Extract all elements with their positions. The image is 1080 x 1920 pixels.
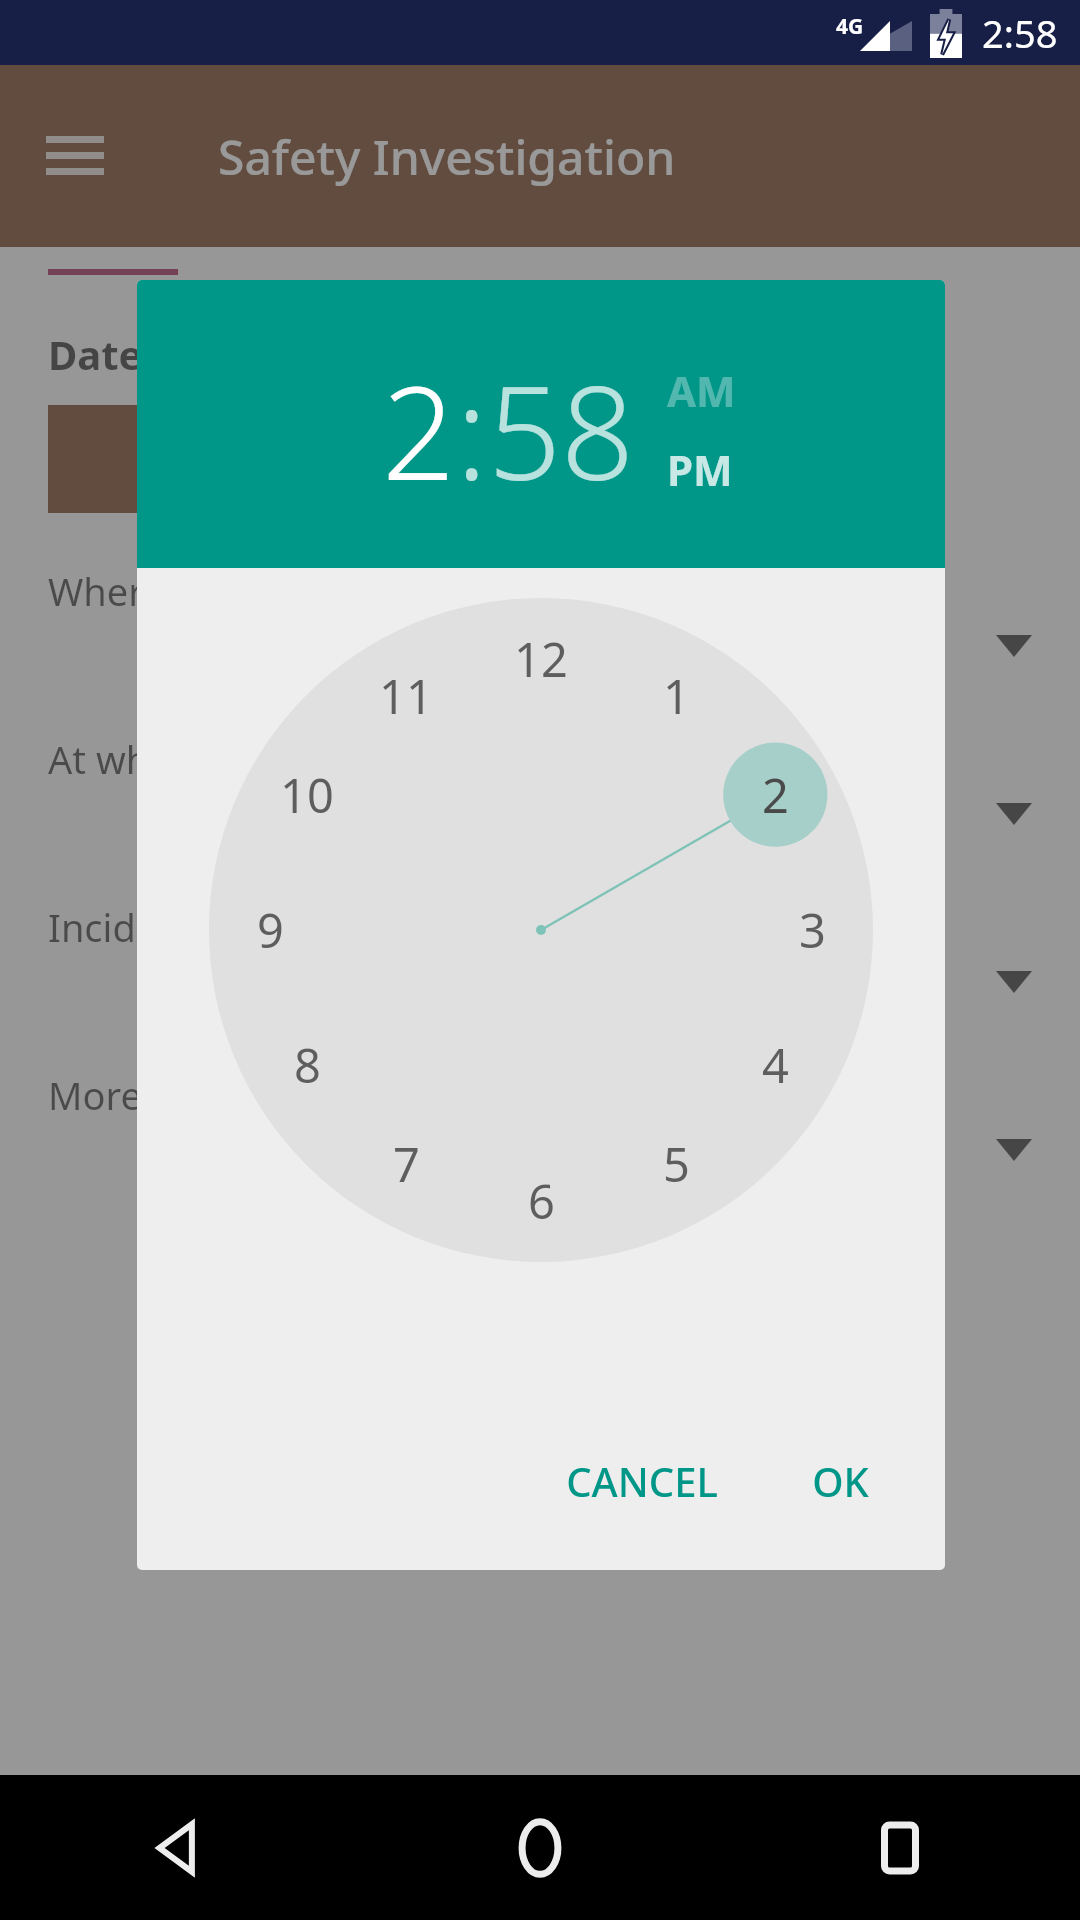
staticText: Incident type	[48, 901, 283, 953]
staticText: 7	[393, 1132, 420, 1196]
button[interactable]: 2	[729, 749, 821, 841]
button[interactable]: 8	[261, 1019, 353, 1111]
staticText: 10	[280, 763, 334, 827]
button[interactable]: Open navigation menu	[40, 121, 110, 191]
button[interactable]: 6	[495, 1155, 587, 1247]
button[interactable]: PM	[667, 441, 733, 498]
button[interactable]	[48, 405, 348, 513]
button[interactable]: At what time?	[48, 733, 1032, 901]
button[interactable]: OK	[792, 1440, 889, 1522]
staticText: 6	[528, 1169, 555, 1233]
staticText: At what time?	[48, 733, 292, 785]
button[interactable]: Incident type	[48, 901, 1032, 1069]
staticText: 2:58	[982, 7, 1058, 59]
staticText: 12	[514, 627, 568, 691]
button[interactable]: 4	[729, 1019, 821, 1111]
button[interactable]: 5	[630, 1118, 722, 1210]
button[interactable]: 2	[382, 343, 456, 517]
button[interactable]: Home	[360, 1775, 720, 1920]
button[interactable]: 3	[766, 884, 858, 976]
staticText: 9	[257, 898, 284, 962]
button[interactable]: Back	[0, 1775, 360, 1920]
staticText: 11	[379, 664, 433, 728]
staticText: 4	[762, 1033, 789, 1097]
button[interactable]: 1	[630, 650, 722, 742]
staticText: 3	[799, 898, 826, 962]
staticText: 1	[663, 664, 690, 728]
staticText: More details	[48, 1069, 270, 1121]
button[interactable]: 12	[495, 613, 587, 705]
staticText: 8	[294, 1033, 321, 1097]
button[interactable]: 10	[261, 749, 353, 841]
staticText: 4G	[836, 12, 864, 41]
button[interactable]: 58	[488, 343, 635, 517]
staticText: Where did it occur?	[48, 565, 390, 617]
button[interactable]: 7	[360, 1118, 452, 1210]
button[interactable]: More details	[48, 1069, 1032, 1237]
staticText: CANCEL	[566, 1454, 718, 1508]
staticText: OK	[812, 1454, 869, 1508]
staticText: :	[456, 343, 488, 517]
staticText: 5	[663, 1132, 690, 1196]
button[interactable]: 11	[360, 650, 452, 742]
button[interactable]: Recent apps	[720, 1775, 1080, 1920]
button[interactable]: Where did it occur?	[48, 565, 1032, 733]
button[interactable]: 9	[224, 884, 316, 976]
staticText: Safety Investigation	[218, 124, 676, 189]
staticText: Date	[48, 327, 143, 381]
button[interactable]: AM	[667, 362, 736, 419]
button[interactable]: CANCEL	[546, 1440, 738, 1522]
staticText: 2	[762, 763, 789, 827]
